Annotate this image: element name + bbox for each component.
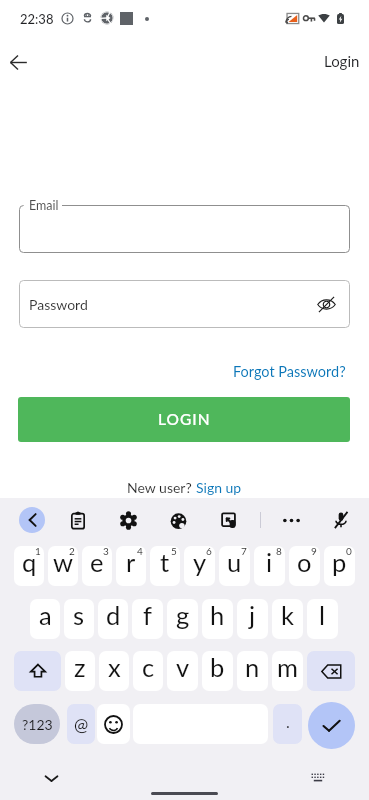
staticText: q bbox=[22, 547, 37, 578]
staticText: Password bbox=[29, 296, 88, 313]
staticText: g bbox=[176, 600, 190, 631]
staticText: 9 bbox=[311, 546, 317, 557]
button[interactable]: One-handed mode bbox=[216, 507, 242, 533]
staticText: h bbox=[210, 600, 225, 631]
staticText: LOGIN bbox=[158, 410, 211, 429]
staticText: Forgot Password? bbox=[233, 363, 346, 380]
staticText: w bbox=[53, 547, 74, 578]
staticText: m bbox=[277, 652, 298, 683]
button[interactable]: Login bbox=[324, 52, 360, 70]
staticText: 22:38 bbox=[20, 11, 54, 27]
button[interactable]: l bbox=[307, 599, 338, 639]
button[interactable]: Sign up bbox=[196, 479, 242, 496]
button[interactable]: q bbox=[14, 546, 44, 586]
staticText: Email bbox=[29, 198, 59, 213]
button[interactable]: LOGIN bbox=[18, 397, 350, 442]
button[interactable]: Themes bbox=[165, 507, 191, 533]
button[interactable]: Shift bbox=[14, 651, 61, 691]
button[interactable]: Hide keyboard bbox=[38, 765, 64, 791]
button[interactable]: Show password bbox=[311, 289, 341, 319]
staticText: 3 bbox=[103, 546, 109, 557]
button[interactable]: Switch keyboard bbox=[306, 766, 330, 790]
staticText: Sign up bbox=[196, 479, 242, 496]
staticText: 8 bbox=[276, 546, 282, 557]
button[interactable]: Enter bbox=[308, 702, 355, 749]
button[interactable]: Expand toolbar bbox=[19, 507, 45, 533]
button[interactable]: Voice input off bbox=[328, 507, 354, 533]
staticText: t bbox=[160, 547, 170, 578]
staticText: z bbox=[74, 652, 86, 683]
button[interactable]: n bbox=[237, 651, 268, 691]
staticText: p bbox=[332, 547, 347, 578]
staticText: @ bbox=[74, 714, 89, 734]
staticText: ?123 bbox=[22, 716, 53, 733]
staticText: y bbox=[193, 547, 207, 578]
staticText: x bbox=[108, 652, 121, 683]
staticText: 6 bbox=[206, 546, 212, 557]
button[interactable]: p bbox=[324, 546, 355, 586]
staticText: f bbox=[143, 600, 152, 631]
staticText: New user? bbox=[127, 479, 196, 496]
button[interactable]: s bbox=[64, 599, 94, 639]
button[interactable]: b bbox=[202, 651, 233, 691]
button[interactable]: k bbox=[272, 599, 303, 639]
staticText: u bbox=[227, 547, 242, 578]
staticText: j bbox=[249, 600, 256, 631]
button[interactable]: j bbox=[237, 599, 268, 639]
staticText: 5 bbox=[171, 546, 177, 557]
button[interactable]: c bbox=[133, 651, 163, 691]
staticText: 2 bbox=[69, 546, 75, 557]
staticText: i bbox=[266, 547, 273, 578]
staticText: s bbox=[73, 600, 85, 631]
staticText: v bbox=[176, 652, 190, 683]
button[interactable]: x bbox=[99, 651, 129, 691]
button[interactable]: z bbox=[65, 651, 95, 691]
staticText: 4 bbox=[137, 546, 143, 557]
staticText: e bbox=[90, 547, 104, 578]
button[interactable]: @ bbox=[67, 704, 95, 744]
button[interactable]: r bbox=[116, 546, 146, 586]
staticText: k bbox=[281, 600, 294, 631]
staticText: 0 bbox=[346, 546, 352, 557]
staticText: l bbox=[319, 600, 326, 631]
staticText: r bbox=[126, 547, 136, 578]
button[interactable] bbox=[19, 205, 350, 253]
button[interactable]: a bbox=[30, 599, 60, 639]
button[interactable]: Forgot Password? bbox=[233, 363, 346, 380]
staticText: 7 bbox=[241, 546, 247, 557]
button[interactable]: w bbox=[48, 546, 78, 586]
button[interactable]: f bbox=[132, 599, 163, 639]
button[interactable]: d bbox=[98, 599, 128, 639]
button[interactable]: Settings bbox=[115, 507, 141, 533]
button[interactable]: o bbox=[289, 546, 320, 586]
button[interactable]: Clipboard bbox=[65, 507, 91, 533]
staticText: a bbox=[39, 600, 52, 631]
button[interactable]: ?123 bbox=[14, 704, 60, 744]
staticText: . bbox=[286, 712, 290, 731]
button[interactable]: Back bbox=[0, 40, 41, 84]
staticText: c bbox=[142, 652, 155, 683]
button[interactable]: More options bbox=[278, 507, 304, 533]
button[interactable]: y bbox=[184, 546, 215, 586]
staticText: d bbox=[106, 600, 121, 631]
button[interactable]: . bbox=[273, 704, 302, 744]
button[interactable]: m bbox=[272, 651, 303, 691]
staticText: b bbox=[210, 652, 225, 683]
button[interactable]: u bbox=[219, 546, 250, 586]
staticText: 1 bbox=[35, 546, 41, 557]
button[interactable]: t bbox=[150, 546, 180, 586]
button[interactable]: Emoji bbox=[97, 704, 130, 744]
button[interactable]: e bbox=[82, 546, 112, 586]
staticText: n bbox=[245, 652, 260, 683]
button[interactable]: Password bbox=[19, 280, 350, 328]
staticText: o bbox=[297, 547, 312, 578]
button[interactable]: g bbox=[167, 599, 198, 639]
button[interactable]: v bbox=[167, 651, 198, 691]
button[interactable]: h bbox=[202, 599, 233, 639]
staticText: Login bbox=[324, 52, 360, 70]
button[interactable]: Backspace bbox=[307, 651, 355, 691]
button[interactable]: i bbox=[254, 546, 285, 586]
